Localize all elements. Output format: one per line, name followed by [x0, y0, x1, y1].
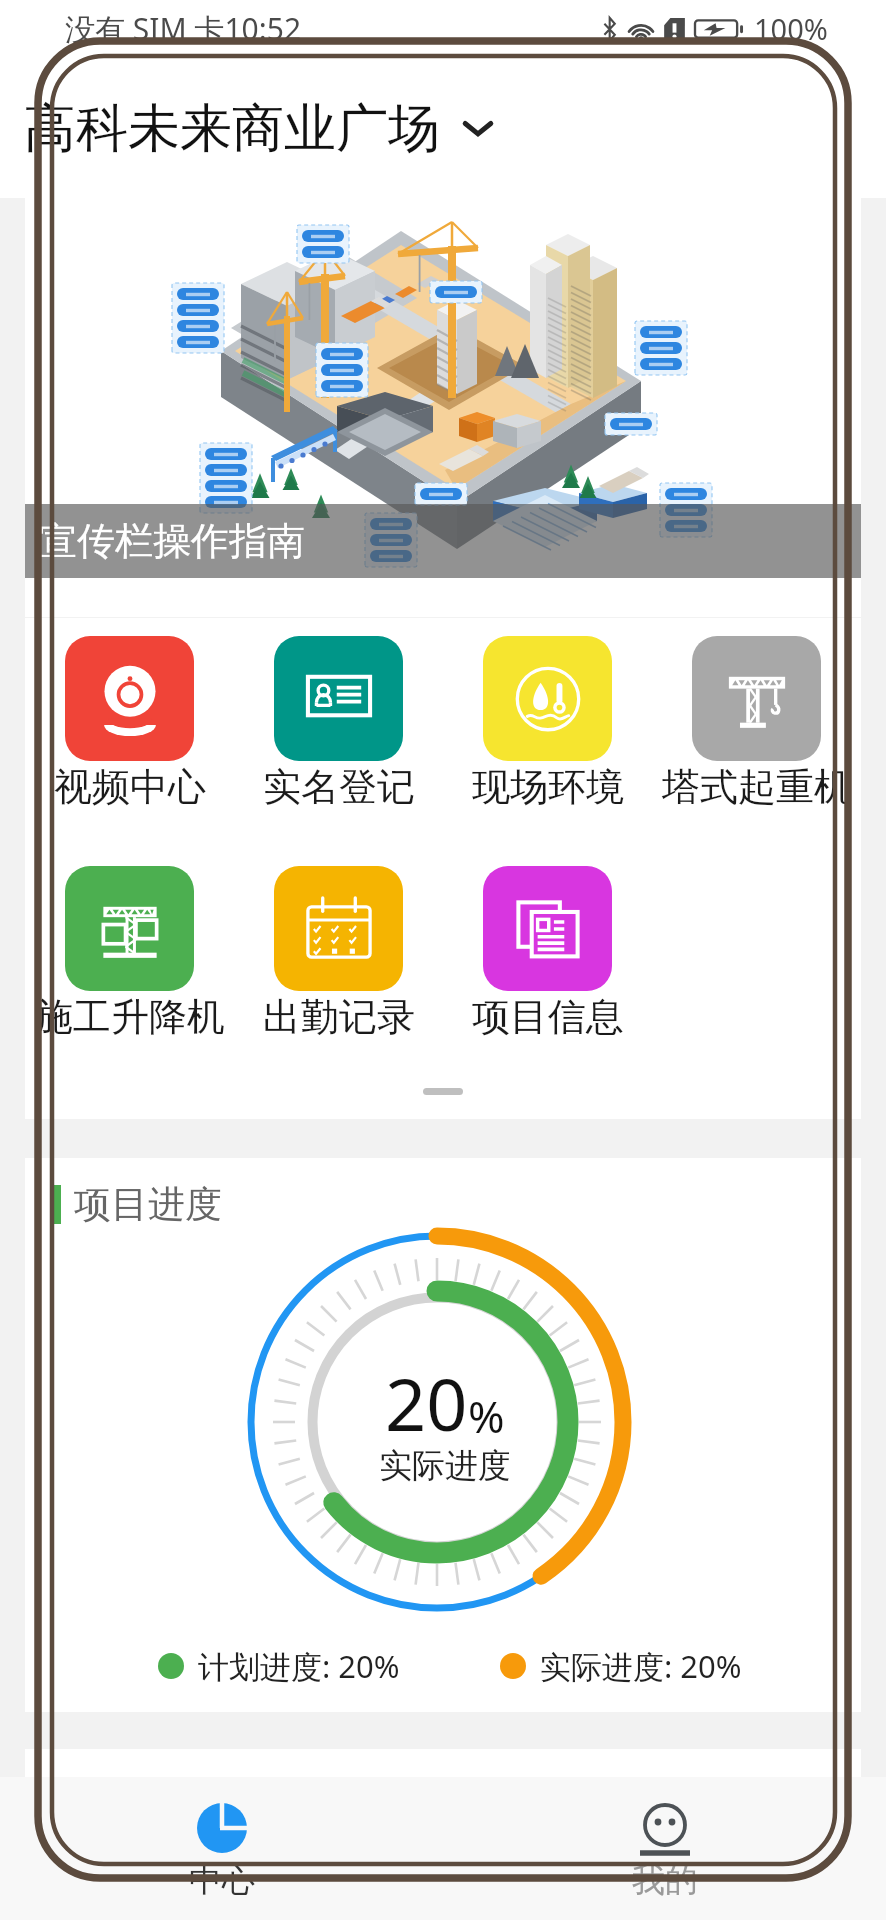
staticText: 实名登记 — [263, 763, 415, 811]
staticText: 没有 SIM 卡10:52 — [65, 8, 302, 49]
staticText: 高科未来商业广场 — [24, 96, 440, 162]
button[interactable]: 视频中心 — [25, 636, 234, 866]
staticText: 视频中心 — [54, 763, 206, 811]
staticText: 项目信息 — [472, 993, 624, 1041]
staticText: 中心 — [189, 1859, 255, 1901]
staticText: 计划进度: 20% — [198, 1645, 400, 1687]
staticText: 项目进度 — [74, 1181, 222, 1228]
staticText: 现场环境 — [472, 763, 624, 811]
staticText: 实际进度: 20% — [540, 1645, 742, 1687]
button[interactable]: 项目信息 — [443, 866, 652, 1096]
staticText: 100% — [754, 9, 828, 48]
button[interactable]: 宣传栏操作指南 — [25, 504, 861, 578]
button[interactable]: 出勤记录 — [234, 866, 443, 1096]
staticText: 施工升降机 — [35, 993, 225, 1041]
staticText: 出勤记录 — [263, 993, 415, 1041]
staticText: 宣传栏操作指南 — [39, 517, 305, 565]
button[interactable]: 实名登记 — [234, 636, 443, 866]
button[interactable]: 塔式起重机 — [652, 636, 861, 866]
staticText: % — [468, 1386, 505, 1446]
button[interactable]: 中心 — [0, 1777, 443, 1920]
staticText: 实际进度 — [379, 1445, 511, 1487]
button[interactable]: 施工升降机 — [25, 866, 234, 1096]
button[interactable]: 我的 — [443, 1777, 886, 1920]
button[interactable]: 现场环境 — [443, 636, 652, 866]
staticText: 20 — [385, 1354, 468, 1452]
staticText: 塔式起重机 — [662, 763, 852, 811]
button[interactable]: 高科未来商业广场 — [0, 56, 886, 198]
staticText: 我的 — [632, 1859, 698, 1901]
